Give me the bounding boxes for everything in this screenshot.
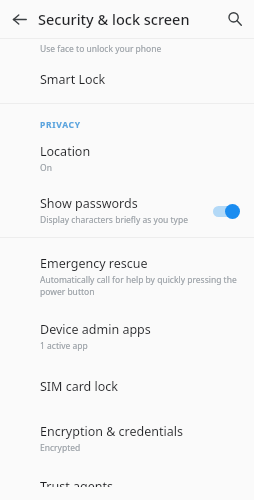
staticText: Display characters briefly as you type xyxy=(40,214,188,226)
staticText: SIM card lock xyxy=(40,378,119,395)
staticText: Use face to unlock your phone xyxy=(40,43,162,55)
button[interactable]: Trust agents xyxy=(0,467,254,500)
button[interactable]: Use face to unlock your phone xyxy=(0,39,254,61)
staticText: 1 active app xyxy=(40,340,88,352)
button[interactable]: Back xyxy=(0,0,38,38)
staticText: Show passwords xyxy=(40,195,138,212)
button[interactable]: SIM card lock xyxy=(0,365,254,412)
staticText: Trust agents xyxy=(40,478,113,487)
button[interactable]: Smart Lock xyxy=(0,61,254,103)
staticText: Emergency rescue xyxy=(40,255,148,272)
button[interactable]: Show passwords xyxy=(210,202,242,220)
staticText: Device admin apps xyxy=(40,321,151,338)
staticText: PRIVACY xyxy=(40,119,81,131)
button[interactable]: Show passwords xyxy=(0,186,254,237)
button[interactable]: Encryption & credentials xyxy=(0,412,254,467)
staticText: Automatically call for help by quickly p… xyxy=(40,274,242,298)
button[interactable]: Emergency rescue xyxy=(0,238,254,310)
staticText: Smart Lock xyxy=(40,71,106,88)
staticText: Encrypted xyxy=(40,442,81,454)
staticText: Encryption & credentials xyxy=(40,423,183,440)
staticText: Location xyxy=(40,143,91,160)
staticText: On xyxy=(40,162,52,174)
button[interactable]: Location xyxy=(0,133,254,186)
button[interactable]: Device admin apps xyxy=(0,310,254,365)
button[interactable]: Search xyxy=(216,0,254,38)
staticText: Security & lock screen xyxy=(38,9,216,29)
